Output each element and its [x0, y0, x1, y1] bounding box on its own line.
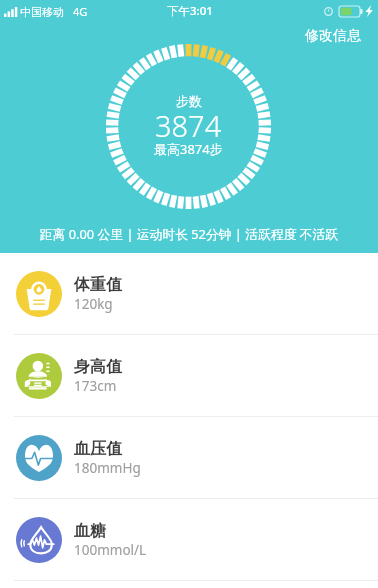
- staticText: 120kg: [74, 295, 113, 313]
- button[interactable]: 体重值: [0, 253, 378, 334]
- staticText: 4G: [73, 4, 88, 19]
- staticText: 距离 0.00 公里 | 运动时长 52分钟 | 活跃程度 不活跃: [0, 225, 378, 242]
- staticText: 3874: [155, 106, 222, 145]
- staticText: 血压值: [74, 439, 122, 459]
- button[interactable]: 修改信息: [289, 0, 378, 53]
- staticText: 步数: [176, 93, 202, 109]
- staticText: 血糖: [74, 521, 106, 541]
- staticText: 180mmHg: [74, 459, 141, 477]
- staticText: 身高值: [74, 357, 122, 377]
- staticText: 173cm: [74, 377, 117, 395]
- staticText: 100mmol/L: [74, 541, 147, 559]
- staticText: 中国移动: [20, 5, 64, 19]
- button[interactable]: 血糖: [0, 499, 378, 580]
- staticText: 体重值: [74, 275, 122, 295]
- button[interactable]: 身高值: [0, 335, 378, 416]
- staticText: 下午3:01: [167, 3, 213, 19]
- staticText: 最高3874步: [154, 140, 223, 158]
- button[interactable]: 血压值: [0, 417, 378, 498]
